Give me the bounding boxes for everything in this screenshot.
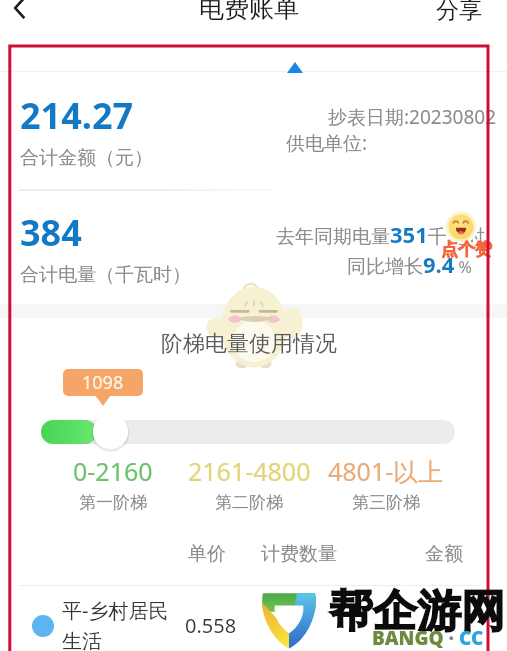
button[interactable]	[10, 196, 488, 300]
staticText: 阶梯电量使用情况	[161, 330, 337, 358]
button[interactable]: 1098	[63, 369, 143, 396]
button[interactable]: Back	[0, 0, 42, 30]
staticText: 金额	[425, 542, 463, 566]
staticText: 去年同期电量351千瓦时	[276, 219, 485, 249]
staticText: 384	[20, 208, 82, 257]
staticText: 1098	[82, 370, 124, 395]
staticText: 合计电量（千瓦时）	[20, 263, 191, 287]
button[interactable]: 分享	[431, 0, 487, 32]
staticText: 平-乡村居民 生活	[62, 597, 169, 651]
staticText: 点个赞	[441, 239, 492, 260]
button[interactable]: Collapse	[275, 56, 315, 80]
staticText: 供电单位:	[286, 130, 368, 156]
button[interactable]: 0-2160	[68, 454, 158, 513]
button[interactable]: 平-乡村居民 生活	[12, 587, 486, 651]
staticText: BANGQ · CC	[372, 625, 484, 651]
staticText: 抄表日期:20230802	[328, 104, 497, 130]
staticText: 单价	[188, 542, 226, 566]
staticText: 第三阶梯	[352, 492, 420, 513]
staticText: 合计金额（元）	[20, 146, 153, 170]
staticText: 计费数量	[261, 542, 337, 566]
button[interactable]: 4801-以上	[325, 454, 447, 513]
staticText: 同比增长9.4 %	[347, 249, 472, 279]
staticText: 2161-4800	[188, 454, 311, 488]
button[interactable]: 点个赞	[440, 208, 496, 258]
staticText: 第一阶梯	[79, 492, 147, 513]
staticText: 0-2160	[73, 454, 153, 488]
staticText: 分享	[436, 0, 482, 25]
button[interactable]: Usage level	[41, 411, 455, 453]
button[interactable]: 2161-4800	[183, 454, 315, 513]
button[interactable]	[10, 80, 488, 188]
staticText: 214.27	[20, 91, 134, 140]
staticText: 第二阶梯	[215, 492, 283, 513]
staticText: 4801-以上	[328, 454, 444, 488]
staticText: 0.558	[185, 612, 237, 639]
staticText: 帮企游网	[329, 584, 505, 639]
staticText: 电费账单	[199, 0, 299, 24]
